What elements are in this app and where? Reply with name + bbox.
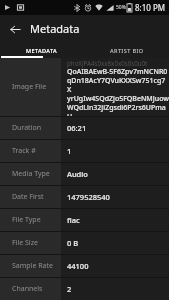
button[interactable]: Back <box>6 20 24 38</box>
button[interactable]: Media Type <box>0 163 169 185</box>
button[interactable]: Image File <box>0 58 169 116</box>
staticText: 0 B <box>67 238 79 248</box>
button[interactable]: Track # <box>0 140 169 162</box>
staticText: ARTIST BIO <box>110 47 144 54</box>
staticText: Image File <box>12 82 47 92</box>
staticText: File Size <box>12 238 38 248</box>
button[interactable]: File Type <box>0 209 169 231</box>
staticText: Sample Rate <box>12 261 53 271</box>
staticText: 06:21 <box>67 123 87 133</box>
staticText: METADATA <box>26 47 58 54</box>
button[interactable]: Date First <box>0 186 169 208</box>
staticText: File Type <box>12 215 41 225</box>
staticText: 50% <box>116 4 126 11</box>
staticText: 8:10 PM <box>135 2 166 13</box>
staticText: flac <box>67 215 80 225</box>
staticText: 44100 <box>67 261 89 271</box>
staticText: phoXjPA4s0xx8x0x0s0s0u0t <box>67 59 148 67</box>
button[interactable]: Duration <box>0 117 169 139</box>
staticText: Audio <box>67 169 88 179</box>
button[interactable]: File Size <box>0 232 169 254</box>
button[interactable]: ARTIST BIO <box>84 42 169 58</box>
staticText: QoAIBAEwB-5F6Zpv7mNCNR0 qDn18AcY7QVuKXXS… <box>67 67 169 116</box>
staticText: Duration <box>12 123 42 133</box>
button[interactable]: METADATA <box>0 42 84 58</box>
staticText: 2 <box>67 284 72 294</box>
staticText: Track # <box>12 146 36 156</box>
staticText: Date First <box>12 192 44 202</box>
button[interactable]: Channels <box>0 278 169 300</box>
button[interactable]: Sample Rate <box>0 255 169 277</box>
staticText: Media Type <box>12 169 50 179</box>
staticText: 1479528540 <box>67 192 110 202</box>
staticText: Channels <box>12 284 43 294</box>
staticText: 1 <box>67 146 72 156</box>
staticText: Metadata <box>30 21 80 36</box>
